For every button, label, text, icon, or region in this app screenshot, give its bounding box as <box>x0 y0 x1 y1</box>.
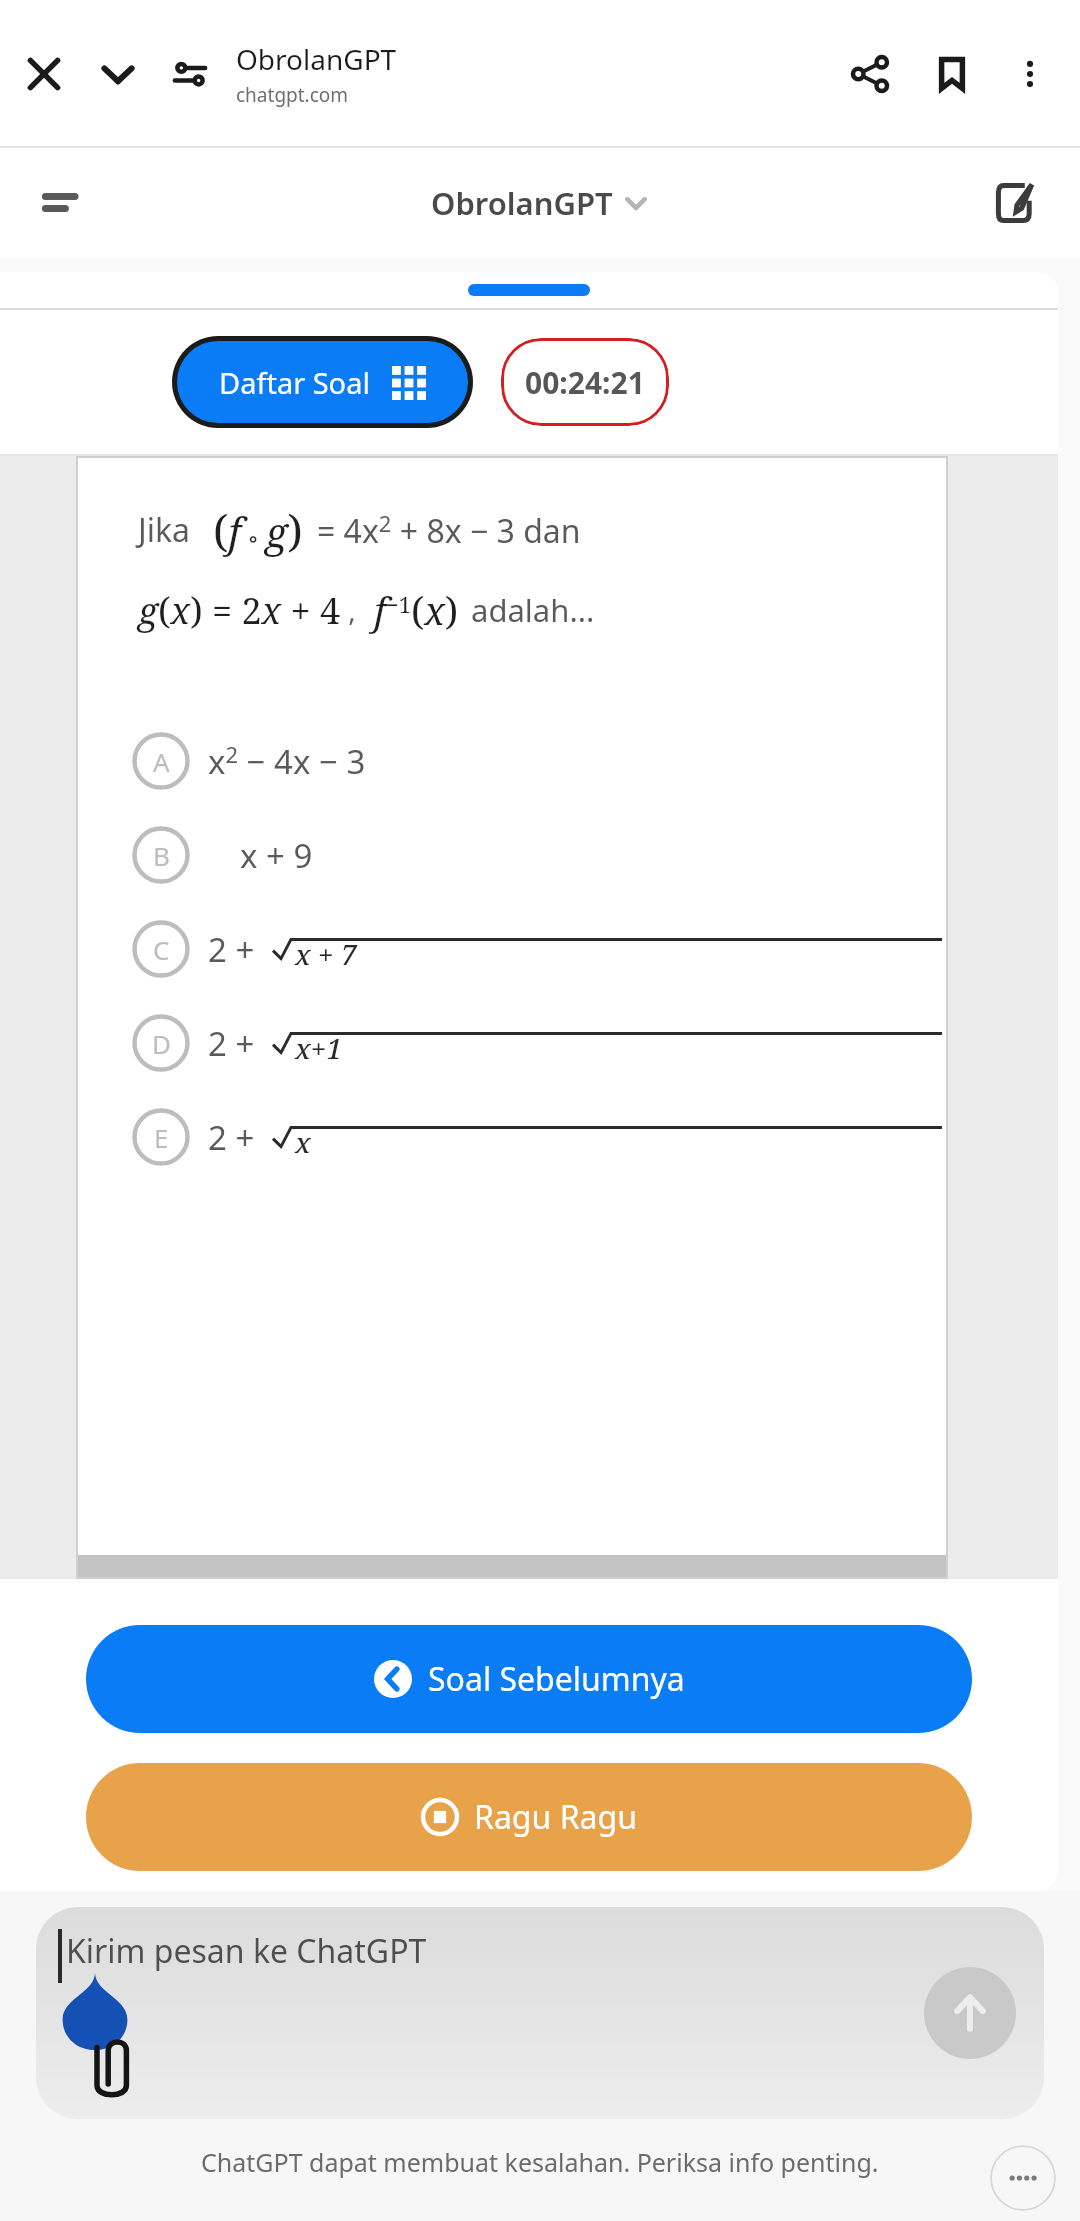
button[interactable]: Collapse <box>86 42 150 106</box>
staticText: Kirim pesan ke ChatGPT <box>66 1929 427 1973</box>
staticText: x + 9 <box>240 833 313 878</box>
staticText: x+1 <box>295 1029 343 1067</box>
button[interactable]: Send <box>924 1967 1016 2059</box>
staticText: ObrolanGPT <box>431 182 613 224</box>
staticText: adalah... <box>471 589 595 631</box>
button[interactable]: Menu <box>28 168 98 238</box>
button[interactable]: More <box>990 2145 1056 2211</box>
staticText: chatgpt.com <box>236 82 349 108</box>
staticText: 00:24:21 <box>525 362 645 403</box>
staticText: ObrolanGPT <box>236 40 397 78</box>
staticText: 2 + <box>208 1021 263 1066</box>
button[interactable]: D <box>132 1014 948 1072</box>
staticText: 2 + <box>208 1115 263 1160</box>
staticText: C <box>153 932 170 967</box>
staticText: x <box>295 1123 311 1161</box>
staticText: Ragu Ragu <box>474 1795 637 1839</box>
staticText: (f ∘ g) <box>213 500 303 560</box>
button[interactable]: Close <box>12 42 76 106</box>
staticText: ChatGPT dapat membuat kesalahan. Periksa… <box>201 2145 879 2179</box>
button[interactable]: A <box>132 732 948 790</box>
button[interactable]: New chat <box>980 167 1052 239</box>
button[interactable]: More options <box>1002 46 1058 102</box>
staticText: x2 − 4x − 3 <box>208 739 366 784</box>
staticText: g(x) = 2x + 4 <box>138 586 341 635</box>
button[interactable]: 00:24:21 <box>501 338 669 426</box>
button[interactable]: Kirim pesan ke ChatGPT <box>36 1907 1044 2119</box>
staticText: , <box>341 591 364 629</box>
button[interactable]: E <box>132 1108 948 1166</box>
staticText: Soal Sebelumnya <box>428 1657 685 1701</box>
button[interactable]: C <box>132 920 948 978</box>
staticText: A <box>153 744 170 779</box>
staticText: B <box>153 838 170 873</box>
button[interactable]: Soal Sebelumnya <box>86 1625 972 1733</box>
button[interactable]: Share <box>838 42 902 106</box>
button[interactable]: Bookmark <box>920 42 984 106</box>
staticText: f−1(x) <box>374 584 459 636</box>
button[interactable]: ObrolanGPT <box>431 182 647 224</box>
staticText: = 4x2 + 8x − 3 dan <box>317 508 581 553</box>
button[interactable]: B <box>132 826 948 884</box>
staticText: E <box>154 1120 169 1155</box>
button[interactable]: Ragu Ragu <box>86 1763 972 1871</box>
staticText: 2 + <box>208 927 263 972</box>
staticText: x + 7 <box>295 935 357 973</box>
staticText: Daftar Soal <box>219 363 370 402</box>
staticText: D <box>152 1026 171 1061</box>
button[interactable]: Daftar Soal <box>177 341 468 423</box>
button[interactable]: Site settings <box>160 44 220 104</box>
staticText: Jika <box>138 508 199 552</box>
